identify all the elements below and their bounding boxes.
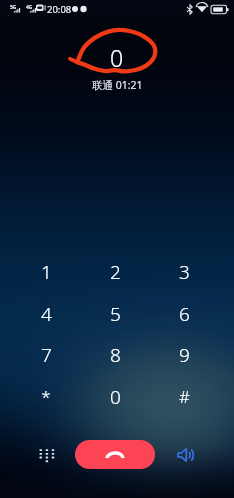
- staticText: 联通 01:21: [92, 78, 143, 92]
- staticText: #: [179, 385, 190, 408]
- button[interactable]: Speaker: [169, 439, 201, 471]
- staticText: 5: [110, 301, 121, 327]
- button[interactable]: 3: [156, 251, 212, 292]
- staticText: 4: [41, 301, 52, 327]
- button[interactable]: 1: [18, 251, 74, 292]
- staticText: 1: [41, 259, 52, 285]
- button[interactable]: 5: [87, 293, 143, 334]
- button[interactable]: 7: [18, 334, 74, 375]
- button[interactable]: 0: [87, 376, 143, 417]
- button[interactable]: 8: [87, 334, 143, 375]
- staticText: 4G: [26, 4, 33, 11]
- button[interactable]: End call: [75, 440, 155, 469]
- button[interactable]: *: [18, 376, 74, 417]
- button[interactable]: Keypad: [30, 439, 62, 471]
- staticText: 0: [110, 384, 121, 410]
- button[interactable]: 9: [156, 334, 212, 375]
- staticText: 5G: [10, 4, 17, 11]
- button[interactable]: 6: [156, 293, 212, 334]
- staticText: 20:08: [47, 3, 72, 16]
- staticText: *: [41, 385, 51, 408]
- staticText: 6: [179, 301, 190, 327]
- staticText: 7: [41, 342, 52, 368]
- staticText: 2: [110, 259, 121, 285]
- button[interactable]: 4: [18, 293, 74, 334]
- staticText: 8: [110, 342, 121, 368]
- button[interactable]: #: [156, 376, 212, 417]
- staticText: 0: [110, 42, 124, 73]
- staticText: 9: [179, 342, 190, 368]
- staticText: 3: [179, 259, 190, 285]
- button[interactable]: 2: [87, 251, 143, 292]
